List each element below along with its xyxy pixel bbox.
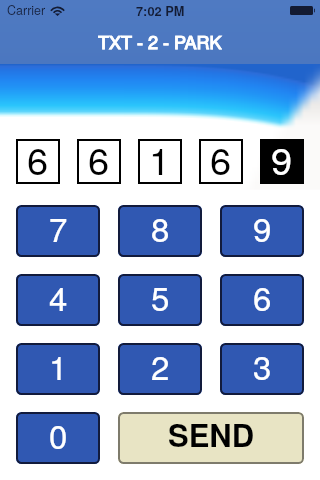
button[interactable]: 9 [220, 205, 304, 257]
button[interactable]: 4 [16, 274, 100, 326]
staticText: 9 [271, 131, 293, 176]
staticText: 4 [49, 274, 68, 320]
staticText: 6 [88, 131, 110, 176]
button[interactable]: 6 [77, 139, 121, 184]
button[interactable]: 0 [16, 412, 100, 464]
staticText: 3 [253, 343, 272, 389]
button[interactable]: 5 [118, 274, 202, 326]
staticText: 7:02 PM [136, 2, 185, 20]
staticText: SEND [168, 412, 255, 456]
staticText: TXT - 2 - PARK [98, 28, 222, 54]
button[interactable]: 1 [138, 139, 182, 184]
button[interactable]: 8 [118, 205, 202, 257]
other: Battery [290, 6, 315, 15]
button[interactable]: SEND [118, 412, 304, 464]
button[interactable]: 3 [220, 343, 304, 395]
button[interactable]: 9 [260, 139, 304, 184]
staticText: 9 [253, 205, 272, 251]
staticText: TXT - 2 - PARK [98, 28, 222, 54]
staticText: Carrier [7, 1, 46, 19]
staticText: 7 [49, 205, 68, 251]
staticText: 2 [151, 343, 170, 389]
staticText: 0 [49, 412, 68, 458]
staticText: 1 [149, 131, 171, 176]
staticText: 8 [151, 205, 170, 251]
staticText: 6 [210, 131, 232, 176]
button[interactable]: 6 [199, 139, 243, 184]
button[interactable]: 6 [16, 139, 60, 184]
button[interactable]: 7 [16, 205, 100, 257]
staticText: 6 [27, 131, 49, 176]
button[interactable]: 1 [16, 343, 100, 395]
staticText: 5 [151, 274, 170, 320]
button[interactable]: 2 [118, 343, 202, 395]
staticText: 1 [49, 343, 68, 389]
button[interactable]: 6 [220, 274, 304, 326]
other: Wi-Fi signal [52, 7, 63, 16]
staticText: 6 [253, 274, 272, 320]
